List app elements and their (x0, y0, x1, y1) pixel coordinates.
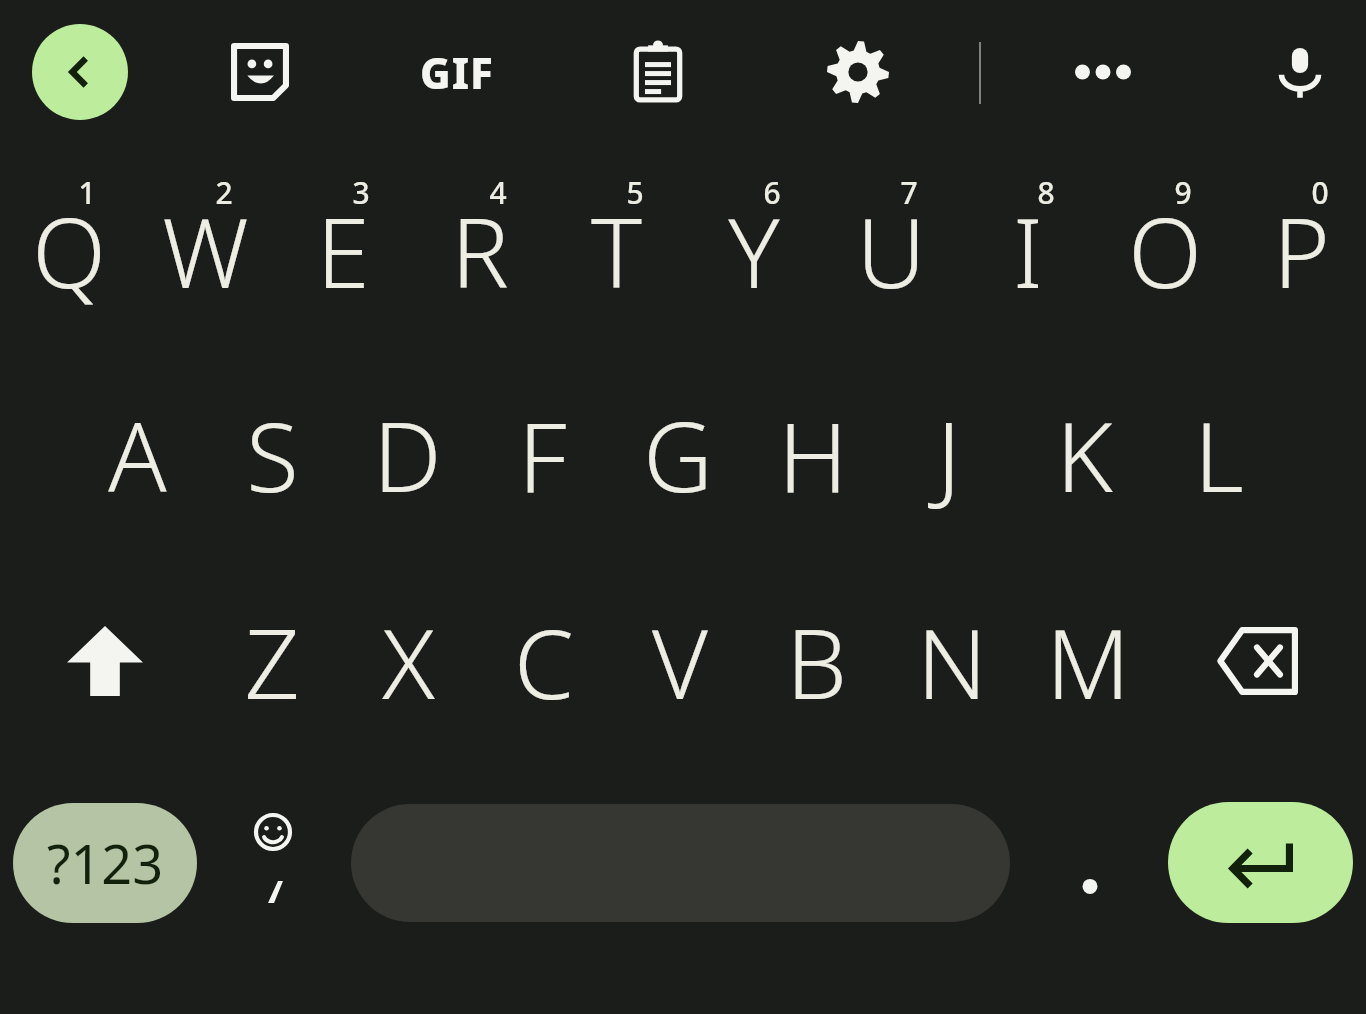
staticText: Y (728, 185, 780, 316)
button[interactable]: J (880, 384, 1016, 524)
staticText: N (917, 596, 987, 727)
staticText: S (246, 389, 299, 520)
staticText: 4 (489, 172, 507, 212)
button[interactable]: K (1016, 384, 1152, 524)
staticText: 2 (215, 172, 233, 212)
button[interactable]: Stickers (212, 24, 308, 120)
button[interactable]: Back (32, 24, 128, 120)
staticText: 3 (352, 172, 370, 212)
button[interactable]: E (274, 150, 411, 350)
button[interactable]: H (745, 384, 881, 524)
staticText: 0 (1311, 172, 1329, 212)
staticText: D (373, 389, 442, 520)
staticText: P (1273, 185, 1330, 316)
button[interactable]: Y (685, 150, 822, 350)
button[interactable]: Period (1027, 803, 1153, 923)
staticText: 9 (1174, 172, 1192, 212)
staticText: F (518, 389, 567, 520)
staticText: Z (244, 596, 300, 727)
staticText: 7 (900, 172, 918, 212)
button[interactable]: O (1096, 150, 1233, 350)
button[interactable]: C (476, 591, 612, 731)
button[interactable]: L (1151, 384, 1287, 524)
button[interactable]: Voice input (1252, 24, 1348, 120)
button[interactable]: Space (351, 804, 1010, 922)
button[interactable]: B (748, 591, 884, 731)
button[interactable]: Z (204, 591, 340, 731)
staticText: 6 (763, 172, 781, 212)
button[interactable]: Backspace (1189, 591, 1325, 731)
button[interactable]: T (548, 150, 685, 350)
staticText: W (162, 185, 249, 316)
button[interactable]: I (959, 150, 1096, 350)
staticText: 5 (626, 172, 644, 212)
staticText: 8 (1037, 172, 1055, 212)
button[interactable]: Q (0, 150, 137, 350)
staticText: J (936, 389, 961, 520)
staticText: L (1194, 389, 1244, 520)
button[interactable]: GIF (409, 24, 505, 120)
staticText: Q (32, 185, 106, 316)
staticText: E (316, 185, 370, 316)
staticText: I (1013, 185, 1043, 316)
staticText: B (786, 596, 847, 727)
button[interactable]: F (474, 384, 610, 524)
button[interactable]: More options (1055, 24, 1151, 120)
staticText: T (591, 185, 642, 316)
button[interactable]: Settings (810, 24, 906, 120)
button[interactable]: ?123 (13, 803, 197, 923)
button[interactable]: G (610, 384, 746, 524)
button[interactable]: P (1233, 150, 1366, 350)
button[interactable]: N (884, 591, 1020, 731)
staticText: R (451, 185, 509, 316)
staticText: A (108, 389, 167, 520)
button[interactable]: Emoji and comma (210, 793, 336, 933)
staticText: M (1046, 596, 1130, 727)
staticText: K (1056, 389, 1113, 520)
button[interactable]: Shift (37, 591, 173, 731)
button[interactable]: M (1020, 591, 1156, 731)
staticText: U (856, 185, 926, 316)
staticText: ?123 (47, 826, 164, 900)
button[interactable]: V (612, 591, 748, 731)
button[interactable]: A (69, 384, 205, 524)
staticText: GIF (420, 44, 494, 101)
button[interactable]: S (204, 384, 340, 524)
staticText: G (643, 389, 713, 520)
button[interactable]: Enter (1168, 802, 1353, 923)
button[interactable]: X (340, 591, 476, 731)
button[interactable]: U (822, 150, 959, 350)
staticText: 1 (78, 172, 96, 212)
staticText: V (652, 596, 708, 727)
staticText: O (1128, 185, 1202, 316)
staticText: C (514, 596, 574, 727)
button[interactable]: D (339, 384, 475, 524)
button[interactable]: W (137, 150, 274, 350)
button[interactable]: Clipboard (610, 24, 706, 120)
staticText: X (382, 596, 435, 727)
staticText: H (778, 389, 848, 520)
button[interactable]: R (411, 150, 548, 350)
